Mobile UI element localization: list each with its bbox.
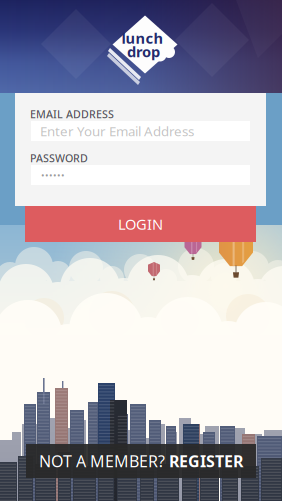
button[interactable]: LOGIN — [25, 206, 256, 242]
staticText: lunch — [121, 28, 163, 48]
staticText: Enter Your Email Address — [40, 122, 194, 140]
button[interactable]: NOT A MEMBER? — [26, 444, 256, 478]
staticText: •••••• — [41, 169, 65, 181]
staticText: LOGIN — [118, 214, 163, 234]
staticText: PASSWORD — [30, 151, 88, 165]
staticText: drop — [127, 42, 160, 61]
staticText: EMAIL ADDRESS — [30, 107, 114, 121]
staticText: REGISTER — [169, 450, 243, 472]
staticText: NOT A MEMBER? — [39, 450, 165, 472]
